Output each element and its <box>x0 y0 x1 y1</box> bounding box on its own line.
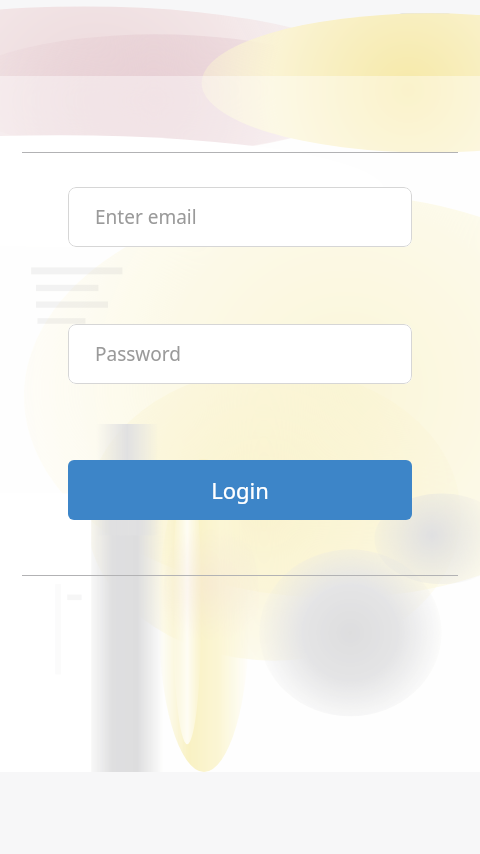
button[interactable]: Enter email <box>68 187 412 247</box>
staticText: Password <box>95 341 181 367</box>
button[interactable]: Login <box>68 460 412 520</box>
staticText: Blood For Life <box>23 23 181 54</box>
button[interactable]: Password <box>68 324 412 384</box>
button[interactable]: Open navigation menu <box>396 13 454 63</box>
staticText: Enter email <box>95 204 197 230</box>
staticText: Login <box>211 475 269 505</box>
